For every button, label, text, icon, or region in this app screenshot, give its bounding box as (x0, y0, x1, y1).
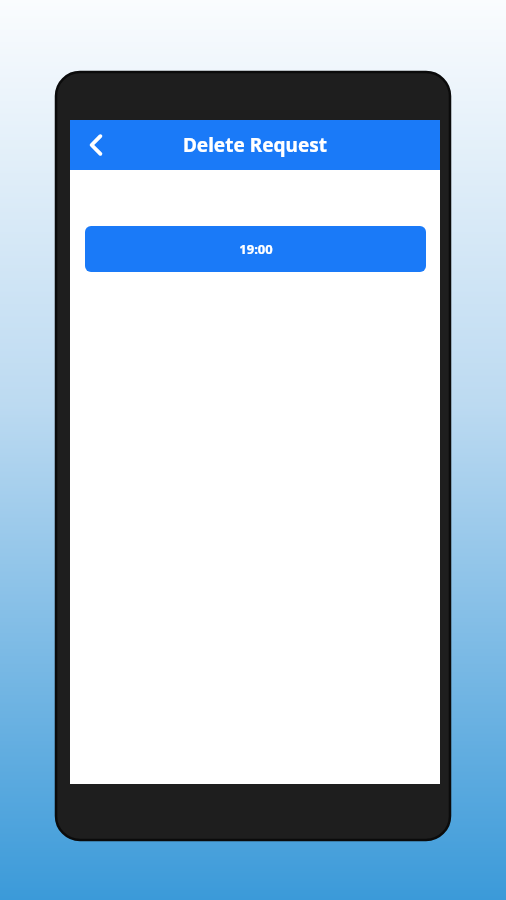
button[interactable]: 19:00 (85, 226, 426, 272)
staticText: 19:00 (239, 240, 273, 258)
staticText: Delete Request (70, 132, 440, 158)
button[interactable]: Back (76, 125, 116, 165)
